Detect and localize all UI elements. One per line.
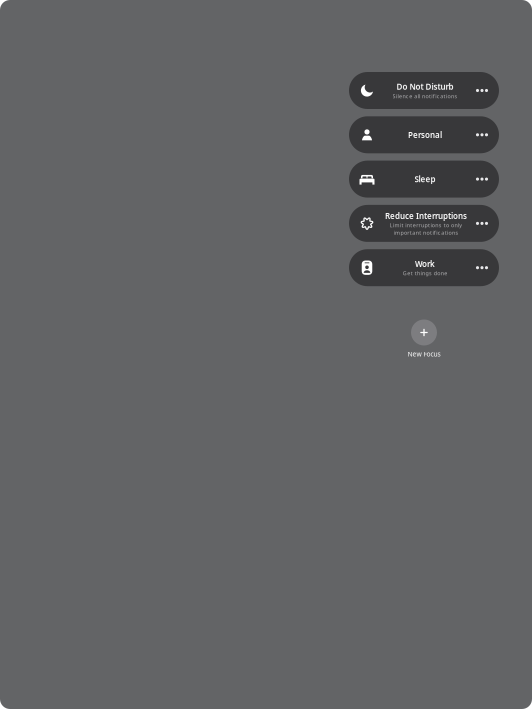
button[interactable]: Personal [349, 116, 499, 153]
button[interactable]: Reduce Interruptions [349, 205, 499, 242]
staticText: important notifications [393, 229, 458, 236]
staticText: Get things done [403, 270, 447, 277]
button[interactable]: Work [349, 249, 499, 286]
staticText: Personal [408, 129, 442, 140]
staticText: New Focus [407, 349, 440, 358]
staticText: Limit interruptions to only [390, 222, 462, 229]
button[interactable]: Sleep [349, 161, 499, 198]
button[interactable]: New Focus [349, 319, 499, 358]
staticText: Work [415, 259, 435, 269]
staticText: Do Not Disturb [396, 81, 453, 92]
button[interactable]: Do Not Disturb [349, 72, 499, 109]
staticText: Silence all notifications [393, 92, 457, 100]
staticText: Reduce Interruptions [385, 210, 467, 221]
staticText: Sleep [414, 174, 435, 184]
